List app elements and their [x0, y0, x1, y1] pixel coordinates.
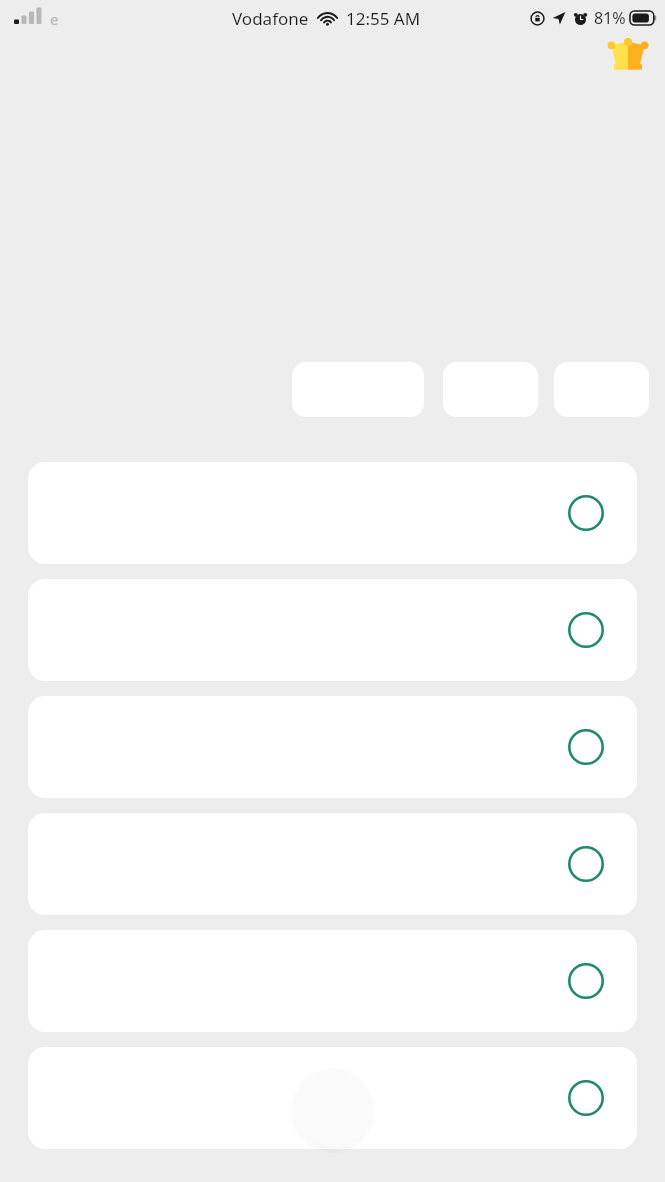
other: Select item	[568, 612, 604, 648]
button[interactable]: Select item	[28, 930, 637, 1032]
other: Select item	[568, 495, 604, 531]
button[interactable]: Select item	[28, 462, 637, 564]
button[interactable]: Filter	[443, 362, 538, 417]
other: Select item	[568, 963, 604, 999]
button[interactable]: Filter	[554, 362, 649, 417]
button[interactable]: Select item	[28, 579, 637, 681]
button[interactable]: Select item	[28, 1047, 637, 1149]
other: Select item	[568, 1080, 604, 1116]
other: Select item	[568, 729, 604, 765]
staticText: Vodafone	[232, 7, 309, 30]
button[interactable]: Select item	[28, 696, 637, 798]
staticText: 12:55 AM	[346, 7, 421, 30]
other: Select item	[568, 846, 604, 882]
button[interactable]: Premium	[605, 36, 651, 72]
staticText: e	[50, 9, 59, 29]
button[interactable]: Select item	[28, 813, 637, 915]
staticText: 81%	[594, 7, 626, 29]
